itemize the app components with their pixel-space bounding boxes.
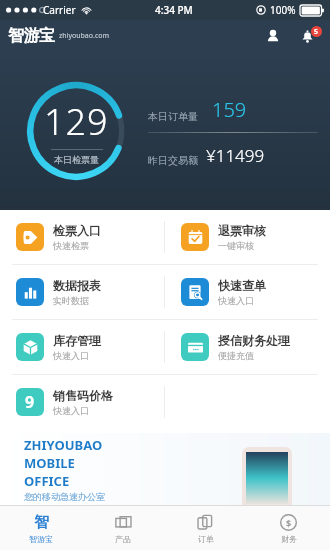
staticText: 129 bbox=[44, 97, 109, 146]
staticText: 智 bbox=[34, 513, 49, 532]
button[interactable]: 智 bbox=[0, 506, 82, 550]
staticText: 退票审核 bbox=[218, 223, 266, 238]
staticText: 智游宝 bbox=[29, 534, 53, 544]
button[interactable]: Notifications bbox=[294, 23, 320, 49]
staticText: 100% bbox=[270, 3, 296, 17]
staticText: 快速查单 bbox=[218, 278, 266, 293]
staticText: 便捷充值 bbox=[218, 350, 254, 361]
staticText: 财务 bbox=[281, 534, 297, 544]
staticText: 159 bbox=[212, 96, 247, 123]
button[interactable]: 订单 bbox=[164, 506, 247, 550]
staticText: $ bbox=[286, 517, 292, 529]
button[interactable]: 产品 bbox=[82, 506, 164, 550]
staticText: 昨日交易额 bbox=[148, 154, 198, 167]
button[interactable]: $ bbox=[247, 506, 330, 550]
button[interactable]: 快速查单 bbox=[165, 265, 330, 319]
staticText: 数据报表 bbox=[53, 278, 101, 293]
button[interactable]: Account bbox=[260, 23, 286, 49]
staticText: 检票入口 bbox=[53, 223, 101, 238]
staticText: 快速入口 bbox=[218, 295, 254, 306]
button[interactable]: 库存管理 bbox=[0, 320, 164, 374]
staticText: Carrier bbox=[43, 3, 76, 17]
button[interactable]: 退票审核 bbox=[165, 210, 330, 264]
staticText: 快速检票 bbox=[53, 240, 89, 251]
staticText: 库存管理 bbox=[53, 333, 101, 348]
staticText: 4:34 PM bbox=[155, 3, 193, 17]
staticText: ¥11499 bbox=[206, 144, 265, 167]
staticText: 快速入口 bbox=[53, 405, 89, 416]
staticText: 9 bbox=[25, 391, 35, 413]
staticText: 本日检票量 bbox=[54, 154, 99, 165]
staticText: 销售码价格 bbox=[53, 388, 113, 403]
button[interactable]: 数据报表 bbox=[0, 265, 164, 319]
staticText: zhiyoubao.com bbox=[59, 31, 110, 41]
button[interactable]: 授信财务处理 bbox=[165, 320, 330, 374]
staticText: 您的移动急速办公室 bbox=[24, 491, 105, 502]
staticText: MOBILE bbox=[24, 454, 75, 472]
staticText: ZHIYOUBAO bbox=[24, 436, 103, 454]
staticText: 智游宝 bbox=[8, 26, 55, 46]
staticText: OFFICE bbox=[24, 472, 70, 490]
staticText: 5 bbox=[314, 27, 319, 37]
staticText: 一键审核 bbox=[218, 240, 254, 251]
staticText: 产品 bbox=[115, 534, 131, 544]
staticText: 实时数据 bbox=[53, 295, 89, 306]
button[interactable]: 9 bbox=[0, 375, 164, 429]
staticText: 本日订单量 bbox=[148, 110, 198, 123]
staticText: 订单 bbox=[198, 534, 214, 544]
button[interactable]: ZHIYOUBAO bbox=[0, 433, 330, 505]
staticText: 授信财务处理 bbox=[218, 333, 290, 348]
staticText: 快速入口 bbox=[53, 350, 89, 361]
button[interactable]: 检票入口 bbox=[0, 210, 164, 264]
